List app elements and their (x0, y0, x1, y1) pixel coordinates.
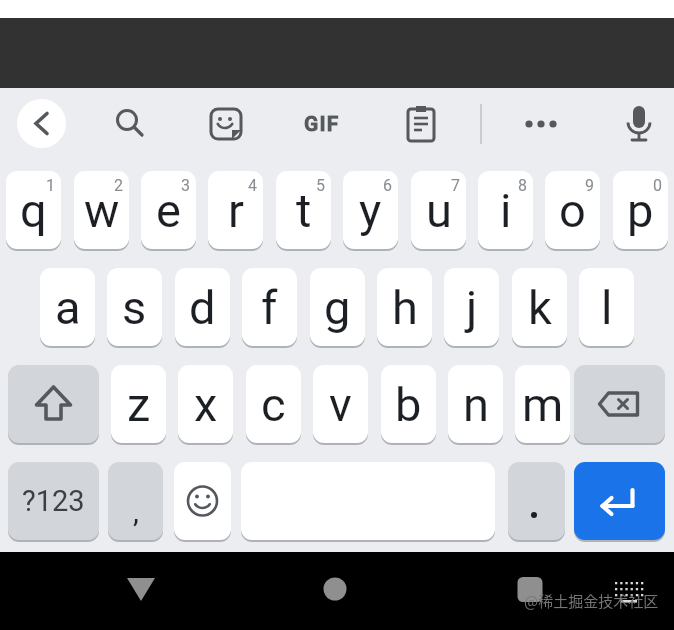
button[interactable]: x (178, 365, 233, 443)
staticText: o (559, 183, 586, 238)
button[interactable]: q (6, 171, 61, 249)
staticText: c (261, 377, 286, 432)
staticText: a (55, 280, 81, 335)
staticText: 3 (181, 176, 190, 195)
button[interactable]: v (313, 365, 368, 443)
button[interactable]: j (444, 268, 499, 346)
staticText: k (528, 280, 552, 335)
staticText: x (194, 377, 218, 432)
staticText: q (20, 183, 47, 238)
button[interactable]: t (276, 171, 331, 249)
staticText: 5 (316, 176, 325, 195)
staticText: GIF (304, 112, 340, 137)
staticText: j (466, 280, 478, 335)
button[interactable] (506, 565, 554, 613)
staticText: f (261, 280, 278, 335)
staticText: e (156, 183, 181, 238)
button[interactable]: z (111, 365, 166, 443)
button[interactable] (397, 100, 445, 148)
button[interactable]: a (40, 268, 95, 346)
staticText: 7 (451, 176, 460, 195)
staticText: 1 (46, 176, 55, 195)
button[interactable]: e (141, 171, 196, 249)
button[interactable] (517, 100, 565, 148)
staticText: h (392, 280, 418, 335)
staticText: u (426, 183, 452, 238)
staticText: w (84, 183, 120, 238)
button[interactable]: l (579, 268, 634, 346)
button[interactable]: p (613, 171, 668, 249)
button[interactable] (311, 565, 359, 613)
button[interactable]: r (208, 171, 263, 249)
staticText: 8 (518, 176, 527, 195)
button[interactable]: GIF (296, 100, 348, 148)
button[interactable]: g (310, 268, 365, 346)
button[interactable] (106, 100, 154, 148)
staticText: r (228, 183, 244, 238)
button[interactable] (508, 462, 565, 540)
button[interactable] (174, 462, 231, 540)
button[interactable] (8, 365, 99, 443)
staticText: n (463, 377, 489, 432)
staticText: y (359, 183, 382, 238)
button[interactable]: o (545, 171, 600, 249)
staticText: 0 (653, 176, 662, 195)
staticText: s (122, 280, 147, 335)
button[interactable] (117, 565, 165, 613)
button[interactable] (603, 565, 651, 613)
button[interactable] (202, 100, 250, 148)
staticText: ?123 (22, 484, 85, 518)
button[interactable] (17, 99, 66, 148)
staticText: p (627, 183, 654, 238)
staticText: m (522, 377, 564, 432)
button[interactable]: n (448, 365, 503, 443)
button[interactable]: d (175, 268, 230, 346)
button[interactable]: , (108, 462, 163, 540)
button[interactable]: m (515, 365, 570, 443)
button[interactable]: c (246, 365, 301, 443)
staticText: 2 (114, 176, 123, 195)
staticText: b (395, 377, 422, 432)
staticText: 9 (585, 176, 594, 195)
button[interactable] (574, 462, 665, 540)
button[interactable] (615, 100, 663, 148)
button[interactable]: k (512, 268, 567, 346)
staticText: i (500, 183, 512, 238)
staticText: z (127, 377, 151, 432)
staticText: v (329, 377, 352, 432)
staticText: , (133, 494, 139, 529)
button[interactable]: h (377, 268, 432, 346)
button[interactable]: w (74, 171, 129, 249)
staticText: l (601, 280, 613, 335)
button[interactable]: f (242, 268, 297, 346)
button[interactable]: u (411, 171, 466, 249)
button[interactable]: ?123 (8, 462, 99, 540)
button[interactable]: y (343, 171, 398, 249)
staticText: 6 (383, 176, 392, 195)
button[interactable]: b (381, 365, 436, 443)
staticText: g (324, 280, 351, 335)
button[interactable]: s (107, 268, 162, 346)
staticText: t (296, 183, 312, 238)
staticText: @稀土掘金技术社区 (524, 590, 659, 612)
button[interactable]: i (478, 171, 533, 249)
button[interactable] (574, 365, 665, 443)
staticText: 4 (248, 176, 257, 195)
staticText: d (189, 280, 216, 335)
